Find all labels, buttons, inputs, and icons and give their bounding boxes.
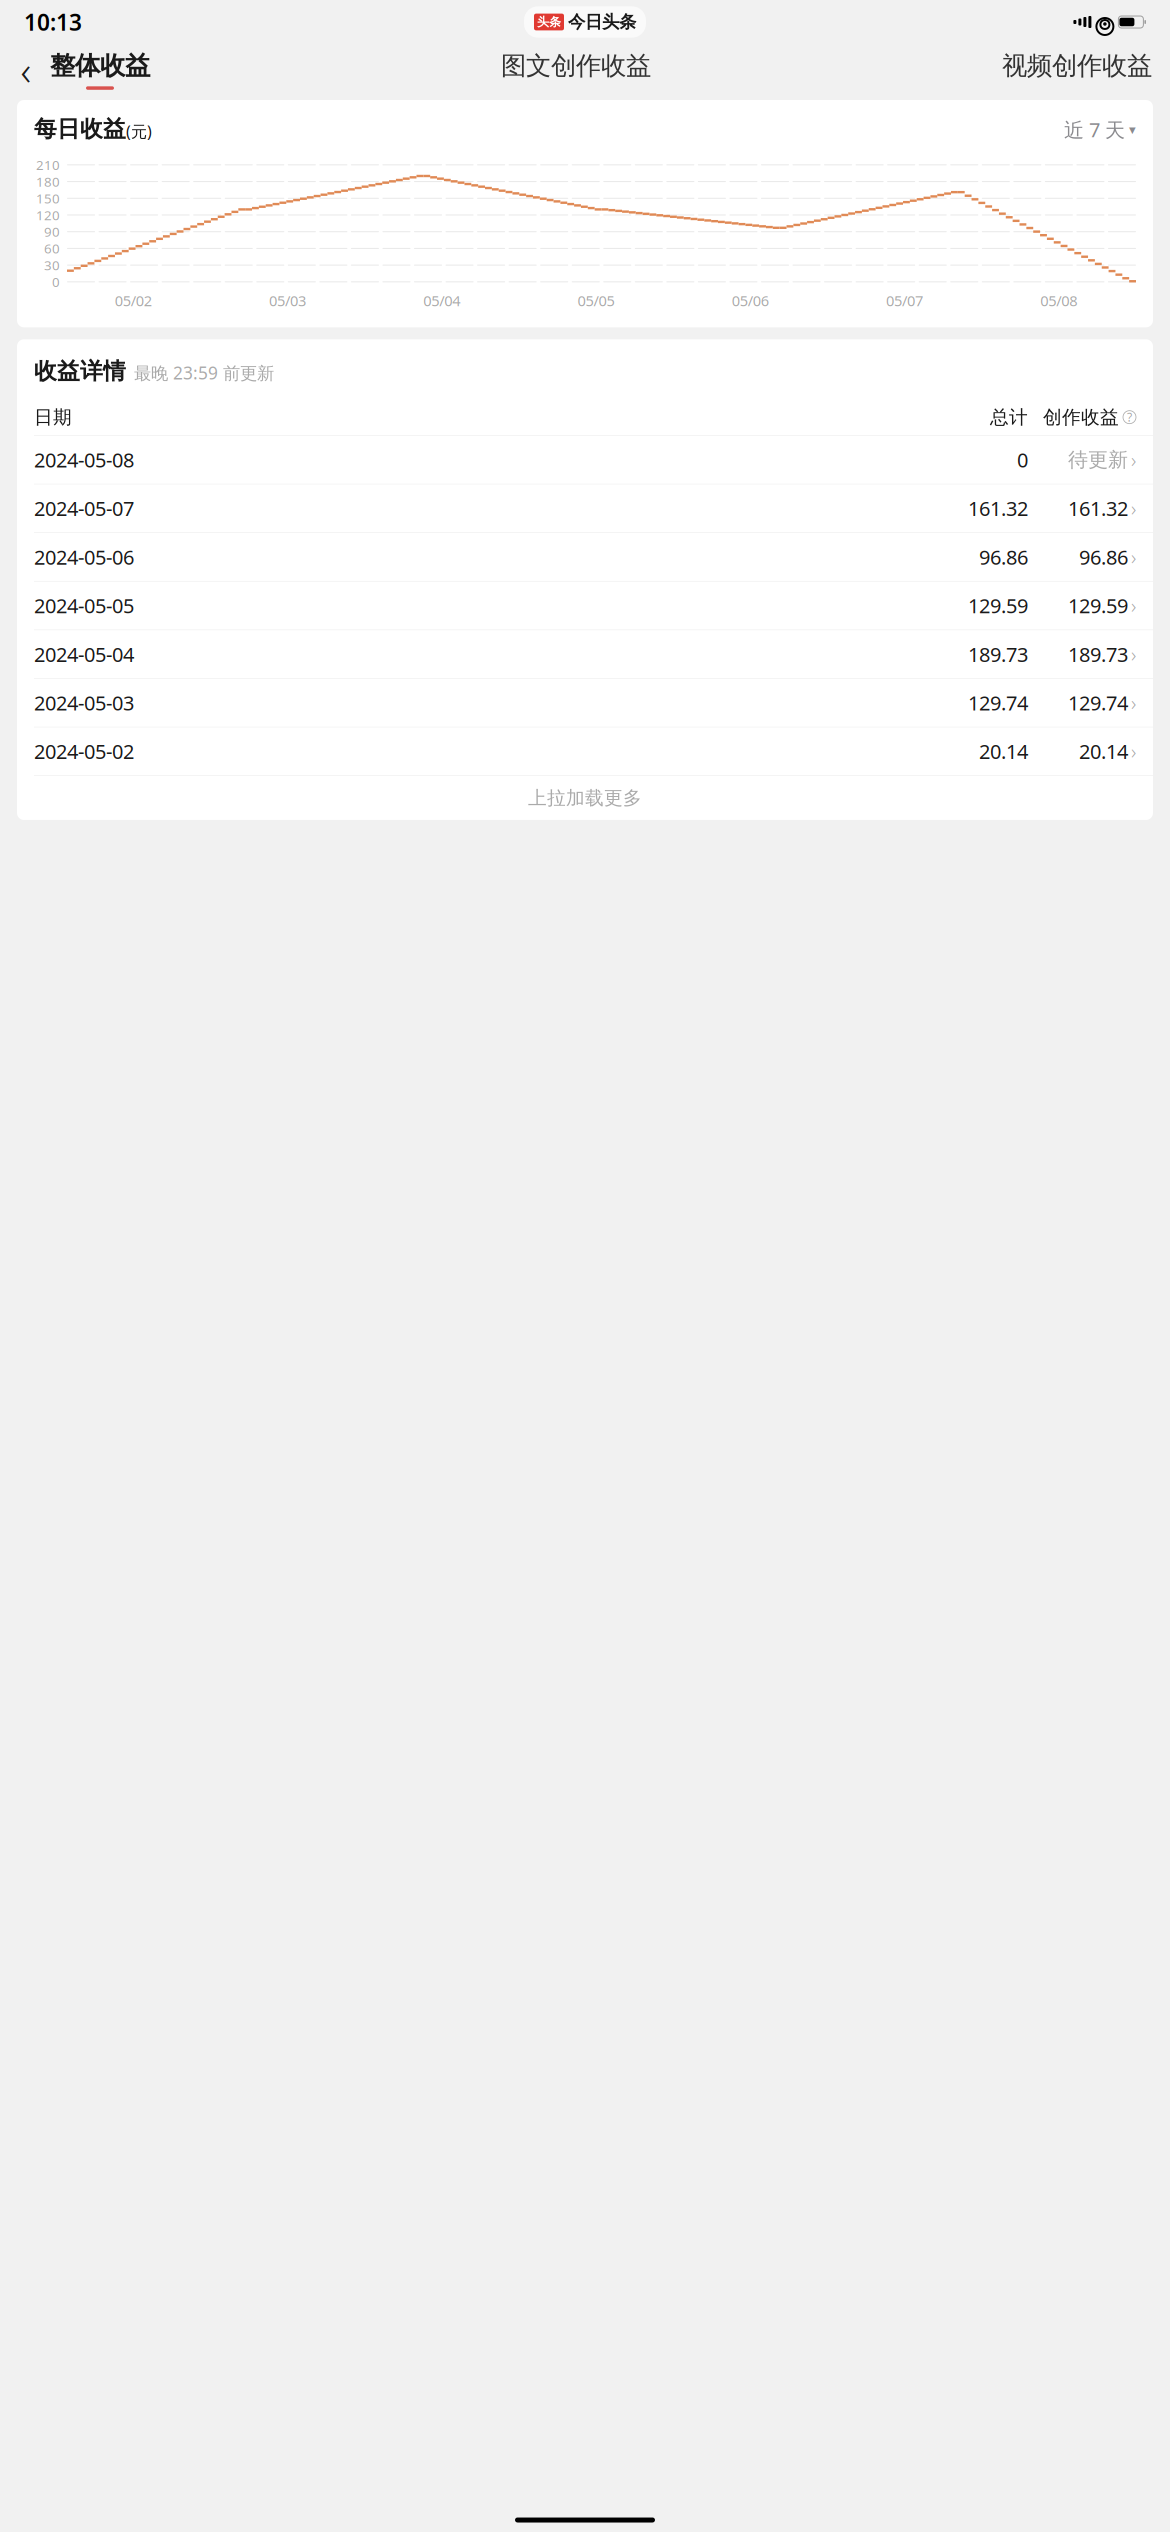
button[interactable]: 视频创作收益 bbox=[998, 50, 1156, 90]
button[interactable]: 2024-05-06 bbox=[17, 533, 1153, 582]
staticText: 日期 bbox=[34, 406, 72, 429]
staticText: ? bbox=[1127, 409, 1132, 425]
staticText: 60 bbox=[44, 240, 60, 257]
button[interactable]: 2024-05-04 bbox=[17, 630, 1153, 679]
staticText: › bbox=[1131, 592, 1136, 619]
staticText: 上拉加载更多 bbox=[528, 786, 642, 809]
button[interactable]: 2024-05-08 bbox=[17, 436, 1153, 484]
staticText: 96.86 bbox=[1079, 544, 1128, 570]
staticText: › bbox=[1131, 446, 1136, 473]
staticText: 2024-05-07 bbox=[34, 495, 134, 522]
staticText: 129.59 bbox=[968, 592, 1028, 619]
staticText: 150 bbox=[36, 189, 60, 207]
staticText: 05/08 bbox=[1040, 291, 1077, 310]
staticText: 05/03 bbox=[269, 291, 306, 310]
staticText: 161.32 bbox=[1068, 495, 1128, 522]
staticText: 2024-05-04 bbox=[34, 641, 134, 667]
staticText: 0 bbox=[52, 273, 60, 291]
button[interactable]: Creation earnings info bbox=[1123, 411, 1136, 424]
staticText: 最晚 23:59 前更新 bbox=[134, 361, 274, 384]
button[interactable]: 近 7 天 bbox=[1064, 116, 1136, 143]
staticText: › bbox=[1131, 641, 1136, 667]
staticText: 129.59 bbox=[1068, 592, 1128, 619]
staticText: 头条 bbox=[537, 15, 561, 29]
staticText: ‹ bbox=[20, 43, 31, 96]
staticText: ▾ bbox=[1129, 122, 1136, 137]
button[interactable]: Back bbox=[6, 48, 46, 92]
staticText: 161.32 bbox=[968, 495, 1028, 522]
staticText: 189.73 bbox=[1068, 641, 1128, 667]
staticText: 129.74 bbox=[1068, 689, 1128, 716]
staticText: 05/06 bbox=[732, 291, 769, 310]
staticText: 整体收益 bbox=[50, 50, 150, 81]
staticText: 2024-05-05 bbox=[34, 592, 134, 619]
staticText: 189.73 bbox=[968, 641, 1028, 667]
staticText: 05/07 bbox=[886, 291, 923, 310]
staticText: › bbox=[1131, 544, 1136, 570]
staticText: › bbox=[1131, 495, 1136, 522]
staticText: 2024-05-06 bbox=[34, 544, 134, 570]
staticText: 2024-05-03 bbox=[34, 689, 134, 716]
staticText: 收益详情 bbox=[34, 357, 126, 385]
staticText: 05/04 bbox=[423, 291, 460, 310]
staticText: 30 bbox=[44, 256, 60, 274]
staticText: 20.14 bbox=[979, 738, 1028, 765]
button[interactable]: 2024-05-07 bbox=[17, 484, 1153, 533]
staticText: 10:13 bbox=[24, 7, 82, 37]
staticText: 创作收益 bbox=[1043, 406, 1119, 429]
staticText: 今日头条 bbox=[568, 11, 636, 33]
staticText: 待更新 bbox=[1068, 447, 1128, 472]
button[interactable]: 图文创作收益 bbox=[497, 50, 655, 90]
staticText: 2024-05-08 bbox=[34, 446, 134, 473]
staticText: 每日收益 bbox=[34, 115, 126, 143]
staticText: 总计 bbox=[990, 406, 1028, 429]
staticText: 0 bbox=[1017, 446, 1028, 473]
staticText: 05/05 bbox=[577, 291, 614, 310]
staticText: 180 bbox=[36, 173, 60, 190]
staticText: 2024-05-02 bbox=[34, 738, 134, 765]
staticText: 129.74 bbox=[968, 689, 1028, 716]
button[interactable]: 上拉加载更多 bbox=[17, 776, 1153, 820]
staticText: 近 7 天 bbox=[1064, 116, 1125, 143]
staticText: 图文创作收益 bbox=[501, 50, 651, 81]
button[interactable]: 2024-05-03 bbox=[17, 679, 1153, 727]
button[interactable]: 整体收益 bbox=[46, 50, 154, 90]
button[interactable]: 2024-05-02 bbox=[17, 727, 1153, 776]
staticText: (元) bbox=[126, 121, 152, 142]
staticText: 90 bbox=[44, 223, 60, 240]
staticText: 210 bbox=[36, 156, 60, 174]
staticText: 20.14 bbox=[1079, 738, 1128, 765]
button[interactable]: 2024-05-05 bbox=[17, 582, 1153, 630]
staticText: 120 bbox=[36, 206, 60, 224]
staticText: 视频创作收益 bbox=[1002, 50, 1152, 81]
staticText: 05/02 bbox=[115, 291, 152, 310]
staticText: › bbox=[1131, 738, 1136, 765]
staticText: › bbox=[1131, 689, 1136, 716]
staticText: 96.86 bbox=[979, 544, 1028, 570]
